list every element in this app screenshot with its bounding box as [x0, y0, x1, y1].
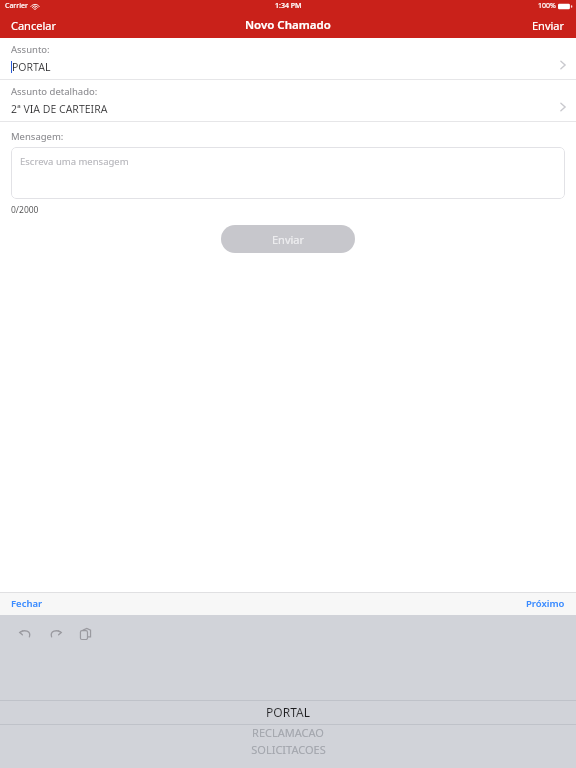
- button[interactable]: Fechar: [0, 594, 54, 613]
- button[interactable]: Escreva uma mensagem: [11, 147, 565, 199]
- staticText: Cancelar: [11, 18, 56, 33]
- staticText: 100%: [538, 1, 556, 11]
- button[interactable]: SOLICITACOES: [0, 742, 576, 757]
- staticText: 0/2000: [11, 204, 39, 216]
- staticText: Escreva uma mensagem: [20, 155, 129, 168]
- staticText: Novo Chamado: [245, 17, 331, 33]
- staticText: 1:34 PM: [275, 1, 302, 11]
- button[interactable]: Próximo: [515, 594, 576, 613]
- button[interactable]: Assunto:: [0, 38, 576, 79]
- button[interactable]: Paste: [74, 623, 96, 645]
- staticText: Carrier: [5, 1, 28, 11]
- staticText: Enviar: [532, 18, 565, 33]
- staticText: 2ª VIA DE CARTEIRA: [11, 102, 108, 116]
- button[interactable]: Redo: [44, 623, 66, 645]
- button[interactable]: Enviar: [521, 14, 576, 37]
- button[interactable]: PORTAL: [0, 704, 576, 720]
- staticText: Assunto:: [11, 43, 50, 56]
- button[interactable]: Assunto detalhado:: [0, 80, 576, 121]
- staticText: Próximo: [526, 597, 565, 610]
- staticText: Enviar: [272, 232, 305, 247]
- button[interactable]: Undo: [14, 623, 36, 645]
- staticText: SOLICITACOES: [251, 742, 326, 757]
- button[interactable]: Enviar: [221, 225, 355, 253]
- staticText: PORTAL: [266, 704, 310, 720]
- staticText: RECLAMACAO: [252, 725, 324, 740]
- button[interactable]: RECLAMACAO: [0, 725, 576, 740]
- staticText: Fechar: [11, 597, 43, 610]
- staticText: Assunto detalhado:: [11, 85, 98, 98]
- staticText: PORTAL: [12, 60, 51, 74]
- staticText: Mensagem:: [11, 130, 64, 143]
- button[interactable]: Cancelar: [0, 14, 67, 37]
